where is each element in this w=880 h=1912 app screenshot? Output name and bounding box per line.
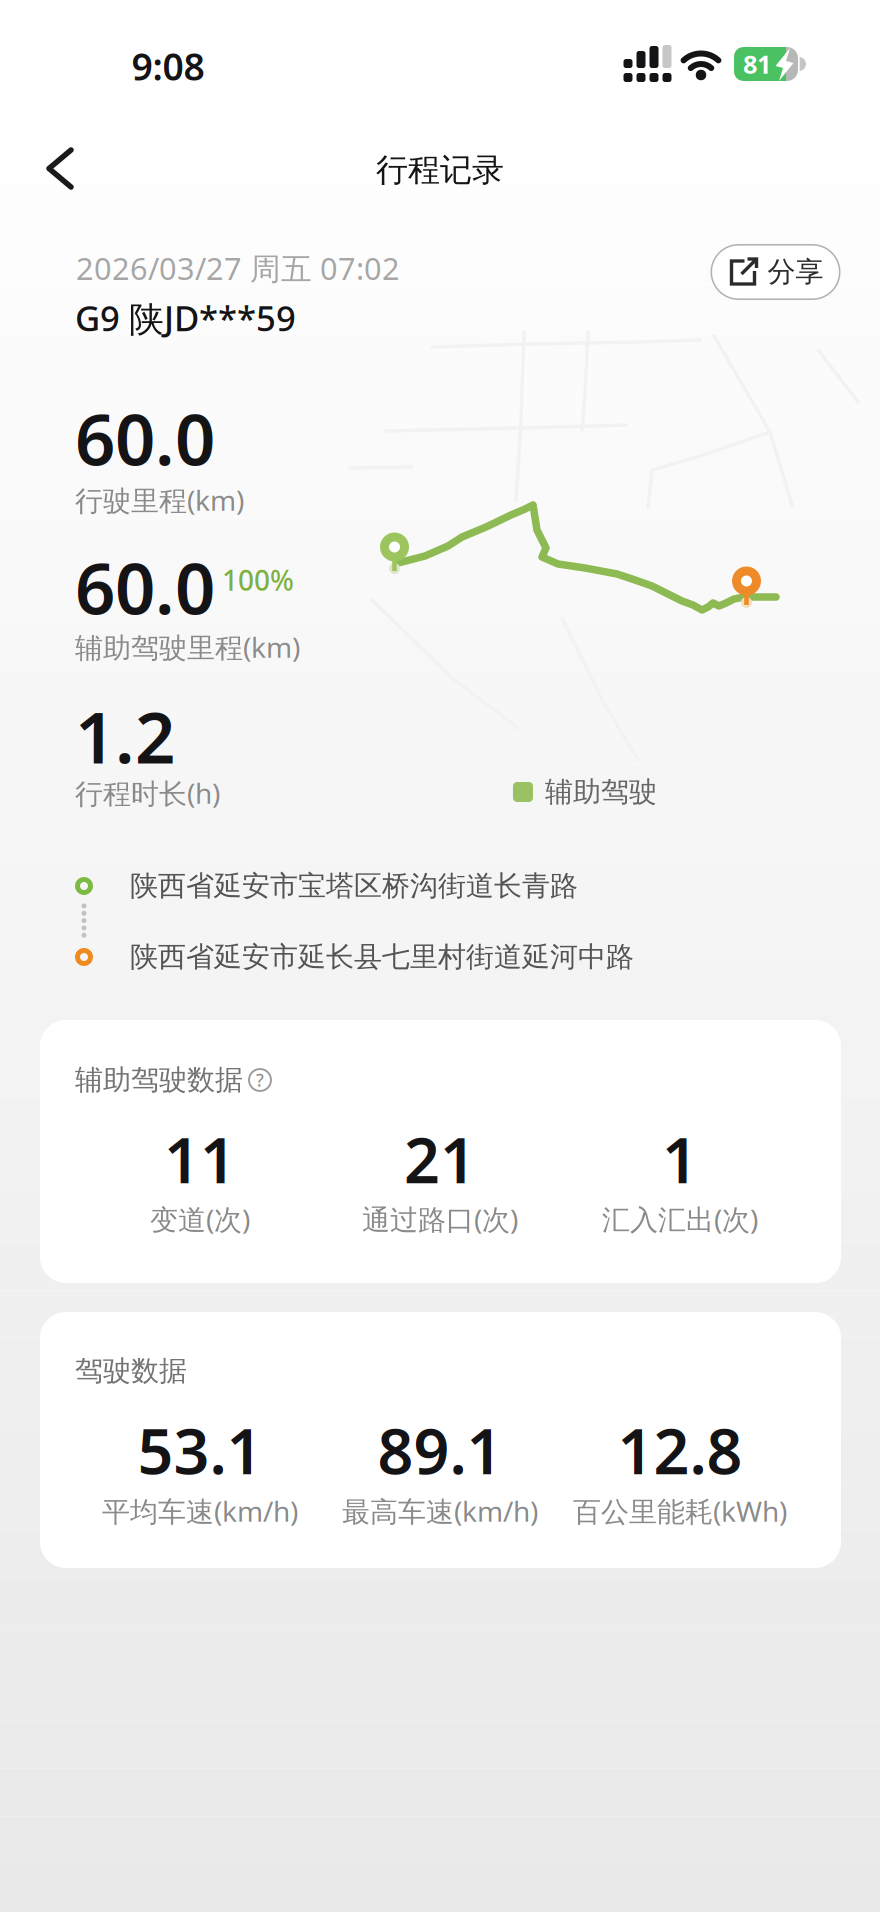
staticText: 辅助驾驶里程(km) <box>75 628 300 666</box>
staticText: 60.0 <box>75 391 215 485</box>
staticText: 辅助驾驶 <box>545 775 657 809</box>
staticText: 驾驶数据 <box>75 1354 187 1388</box>
staticText: 平均车速(km/h) <box>102 1492 298 1530</box>
staticText: ? <box>256 1068 264 1091</box>
staticText: 9:08 <box>131 41 204 91</box>
staticText: 100% <box>222 561 294 599</box>
staticText: 陕西省延安市延长县七里村街道延河中路 <box>130 940 634 974</box>
staticText: 分享 <box>767 255 823 289</box>
button[interactable]: ? <box>245 1065 275 1095</box>
staticText: 1 <box>662 1117 698 1201</box>
staticText: G9 陕JD***59 <box>75 295 296 341</box>
staticText: 60.0 <box>75 540 215 634</box>
staticText: 1.2 <box>75 689 175 783</box>
staticText: 89.1 <box>377 1408 502 1492</box>
staticText: 通过路口(次) <box>362 1200 518 1238</box>
staticText: 行程时长(h) <box>75 774 220 812</box>
button[interactable] <box>30 137 92 199</box>
staticText: 11 <box>164 1117 236 1201</box>
staticText: 53.1 <box>137 1408 262 1492</box>
staticText: 81 <box>743 47 771 81</box>
staticText: 最高车速(km/h) <box>342 1492 538 1530</box>
staticText: 行程记录 <box>376 150 504 190</box>
staticText: 变道(次) <box>150 1200 250 1238</box>
staticText: 行驶里程(km) <box>75 481 244 519</box>
staticText: 汇入汇出(次) <box>602 1200 758 1238</box>
staticText: 辅助驾驶数据 <box>75 1063 243 1097</box>
staticText: 12.8 <box>617 1408 742 1492</box>
staticText: 2026/03/27 周五 07:02 <box>76 248 400 288</box>
staticText: 陕西省延安市宝塔区桥沟街道长青路 <box>130 869 578 903</box>
staticText: 21 <box>404 1117 476 1201</box>
button[interactable]: 分享 <box>710 244 840 300</box>
staticText: 百公里能耗(kWh) <box>573 1492 787 1530</box>
